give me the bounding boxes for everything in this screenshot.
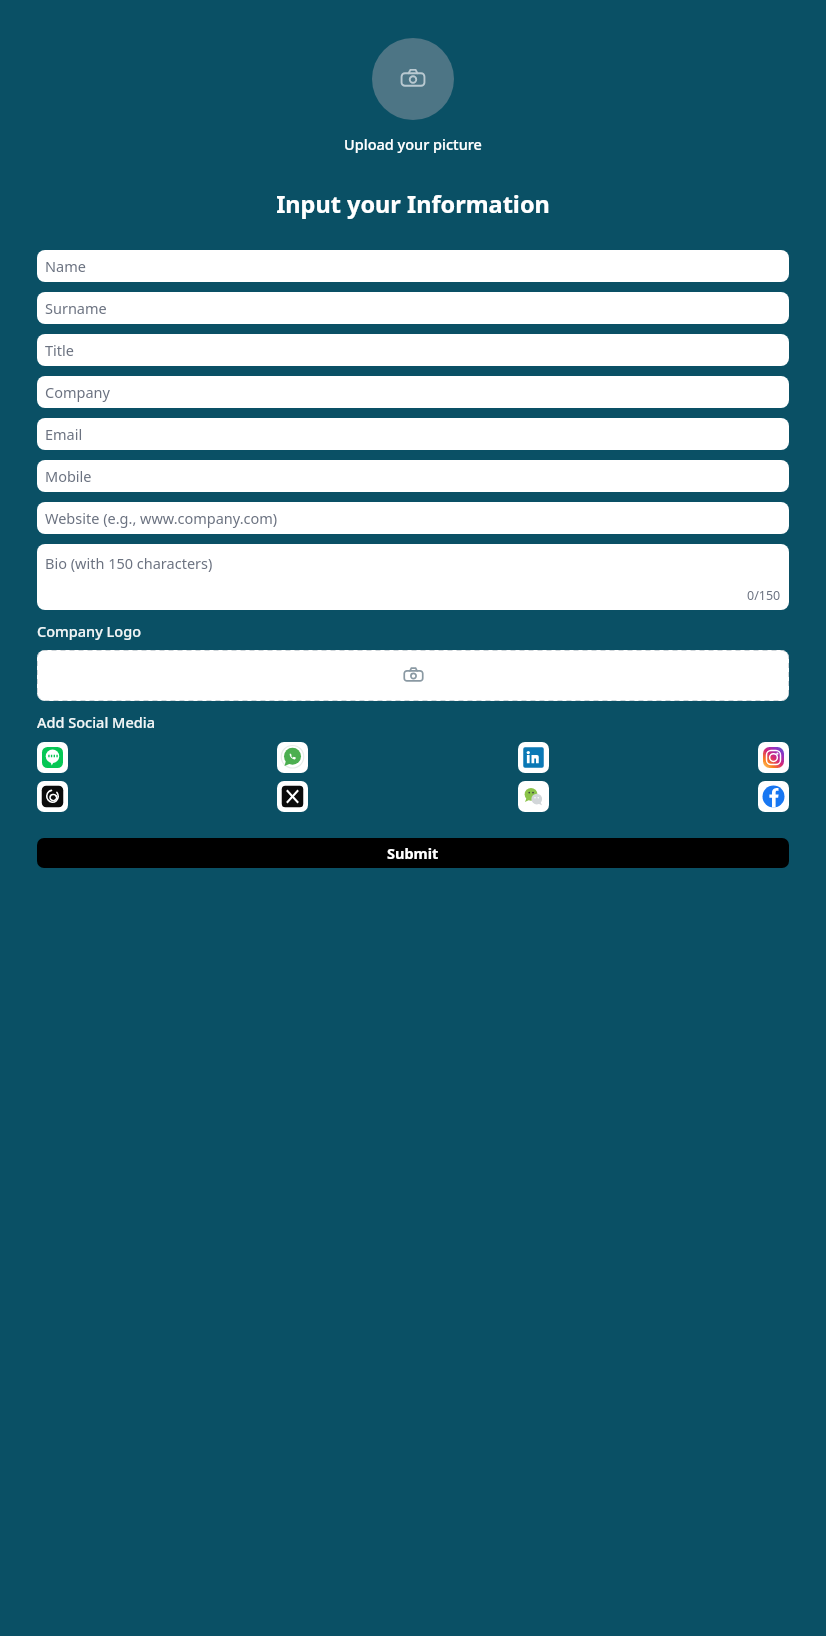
button[interactable]: x (277, 781, 308, 812)
button[interactable]: wechat (518, 781, 549, 812)
staticText: 0/150 (747, 587, 781, 604)
button[interactable]: facebook (758, 781, 789, 812)
button[interactable]: Bio (with 150 characters) (37, 544, 789, 610)
staticText: Website (e.g., www.company.com) (45, 508, 278, 528)
staticText: Upload your picture (344, 134, 482, 154)
button[interactable]: whatsapp (277, 742, 308, 773)
button[interactable]: Submit (37, 838, 789, 868)
staticText: Title (45, 340, 74, 360)
staticText: Input your Information (276, 188, 550, 220)
button[interactable]: Mobile (37, 460, 789, 492)
button[interactable]: instagram (758, 742, 789, 773)
staticText: Submit (387, 843, 439, 863)
staticText: Name (45, 256, 86, 276)
staticText: Surname (45, 298, 107, 318)
staticText: Company (45, 382, 110, 402)
button[interactable]: line (37, 742, 68, 773)
button[interactable]: linkedin (518, 742, 549, 773)
button[interactable]: Name (37, 250, 789, 282)
button[interactable]: threads (37, 781, 68, 812)
button[interactable]: Upload your picture (372, 38, 454, 120)
staticText: Bio (with 150 characters) (45, 553, 213, 573)
button[interactable]: Upload company logo (37, 650, 789, 701)
staticText: Email (45, 424, 83, 444)
button[interactable]: Company (37, 376, 789, 408)
button[interactable]: Email (37, 418, 789, 450)
staticText: Company Logo (37, 621, 142, 641)
button[interactable]: Website (e.g., www.company.com) (37, 502, 789, 534)
staticText: Add Social Media (37, 712, 155, 732)
staticText: Mobile (45, 466, 92, 486)
button[interactable]: Surname (37, 292, 789, 324)
button[interactable]: Title (37, 334, 789, 366)
